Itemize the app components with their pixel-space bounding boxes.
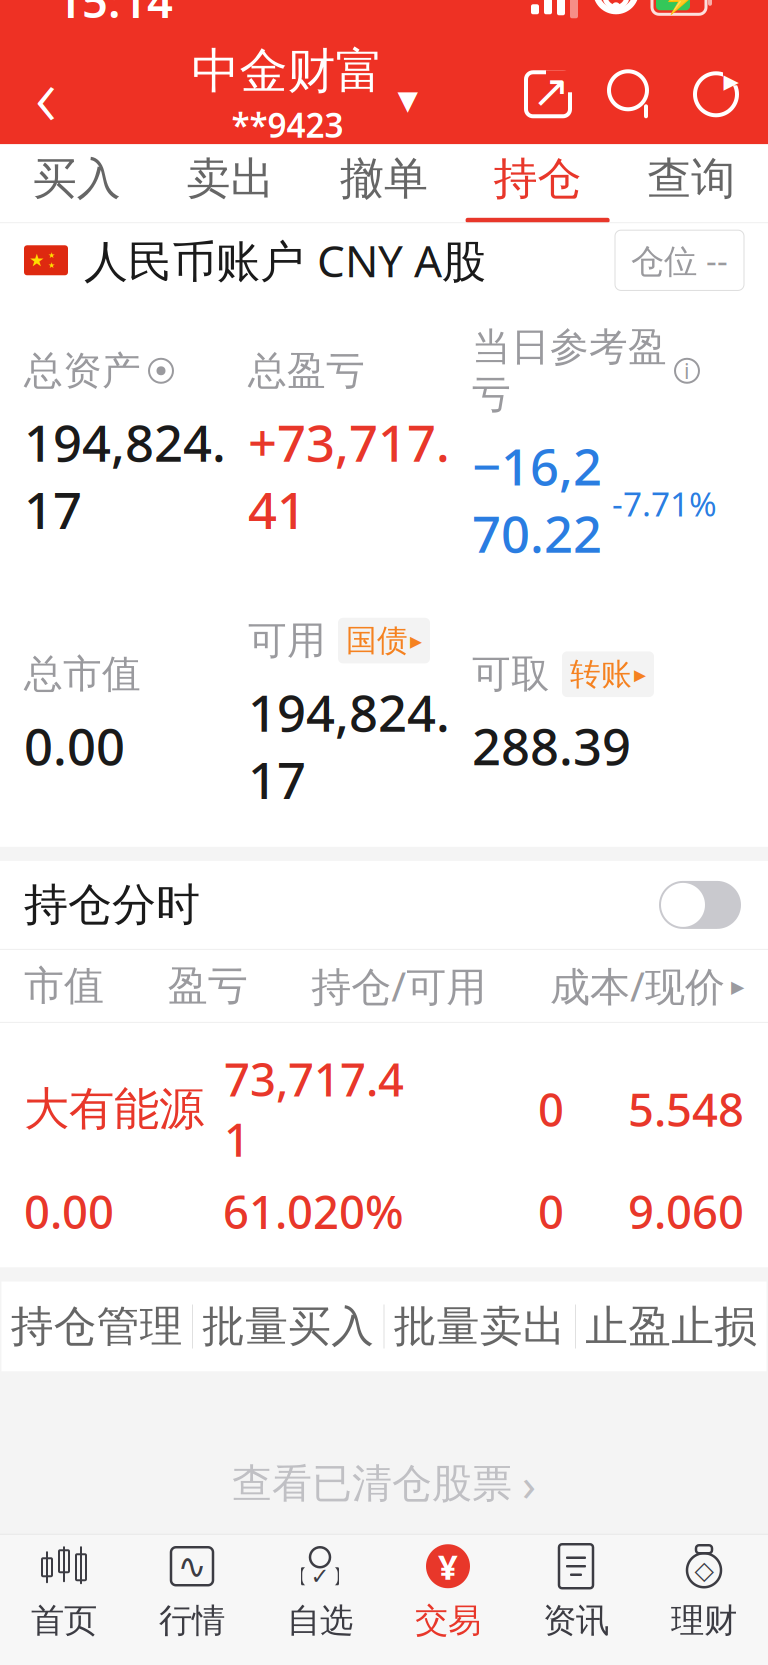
- button[interactable]: 查看已清仓股票: [212, 1441, 556, 1526]
- staticText: 仓位 --: [631, 238, 728, 282]
- staticText: 0.00: [24, 1181, 114, 1241]
- staticText: ↗: [532, 66, 570, 117]
- staticText: 人民币账户 CNY A股: [84, 231, 486, 289]
- staticText: 中金财富: [191, 42, 383, 101]
- button[interactable]: 返回: [0, 48, 92, 140]
- button[interactable]: ∿: [128, 1535, 256, 1647]
- staticText: 73,717.41: [224, 1049, 404, 1169]
- staticText: 持仓: [494, 152, 582, 206]
- staticText: 持仓/可用: [311, 959, 486, 1012]
- button[interactable]: 卖出: [154, 144, 307, 222]
- staticText: 成本/现价: [550, 959, 725, 1012]
- button[interactable]: 持仓: [461, 144, 614, 222]
- staticText: 194,824.17: [248, 678, 450, 813]
- staticText: 卖出: [186, 152, 274, 206]
- button[interactable]: 大有能源: [0, 1023, 768, 1267]
- button[interactable]: 批量买入: [193, 1281, 383, 1371]
- staticText: 持仓分时: [24, 878, 200, 932]
- staticText: 0: [538, 1181, 564, 1241]
- button[interactable]: ✓: [256, 1535, 384, 1647]
- staticText: 批量买入: [202, 1300, 374, 1353]
- staticText: 批量卖出: [394, 1300, 566, 1353]
- staticText: 9.060: [628, 1181, 744, 1241]
- staticText: 理财: [671, 1600, 737, 1641]
- button[interactable]: 持仓管理: [1, 1281, 192, 1371]
- button[interactable]: 分享: [518, 64, 578, 124]
- staticText: ▸: [410, 627, 422, 654]
- staticText: 总资产: [24, 347, 141, 394]
- staticText: 撤单: [340, 152, 428, 206]
- staticText: 持仓管理: [11, 1300, 183, 1353]
- staticText: ▶: [723, 70, 738, 93]
- staticText: 可取: [472, 650, 550, 698]
- staticText: 首页: [31, 1600, 97, 1641]
- staticText: ‹: [35, 39, 57, 149]
- staticText: **9423: [231, 103, 343, 147]
- staticText: 15:14: [56, 0, 173, 30]
- staticText: ▸: [634, 661, 646, 688]
- staticText: ▼: [397, 85, 418, 115]
- button[interactable]: ◇: [640, 1535, 768, 1647]
- staticText: 0.00: [24, 712, 125, 779]
- staticText: +73,717.41: [248, 408, 450, 543]
- button[interactable]: 批量卖出: [384, 1281, 575, 1371]
- staticText: 大有能源: [24, 1081, 204, 1137]
- staticText: 自选: [287, 1600, 353, 1641]
- staticText: 查看已清仓股票: [232, 1459, 512, 1508]
- staticText: 5.548: [628, 1079, 744, 1139]
- button[interactable]: 仓位 --: [615, 230, 744, 290]
- staticText: 可用: [248, 617, 326, 664]
- staticText: i: [684, 357, 690, 385]
- button[interactable]: 转账: [562, 651, 654, 697]
- button[interactable]: 刷新: [686, 64, 746, 124]
- staticText: ★: [29, 250, 45, 270]
- staticText: 盈亏: [168, 961, 248, 1010]
- button[interactable]: 查询: [614, 144, 768, 222]
- staticText: 总盈亏: [248, 347, 365, 394]
- staticText: 总市值: [24, 650, 141, 698]
- staticText: 资讯: [543, 1600, 609, 1641]
- staticText: 194,824.17: [24, 408, 226, 543]
- staticText: 61.020%: [223, 1181, 404, 1241]
- staticText: 当日参考盈亏: [472, 323, 667, 418]
- staticText: 288.39: [472, 712, 631, 779]
- button[interactable]: 中金财富: [181, 42, 428, 147]
- staticText: 行情: [159, 1600, 225, 1641]
- staticText: 0: [538, 1079, 564, 1139]
- staticText: ¥: [438, 1543, 458, 1589]
- staticText: 买入: [33, 152, 121, 206]
- staticText: 交易: [415, 1600, 481, 1641]
- staticText: 转账: [570, 655, 632, 693]
- staticText: ★: [48, 261, 55, 270]
- staticText: ✓: [310, 1563, 329, 1589]
- staticText: 国债: [346, 622, 408, 659]
- staticText: ▸: [731, 971, 744, 1001]
- staticText: 市值: [24, 961, 104, 1010]
- button[interactable]: 撤单: [307, 144, 461, 222]
- staticText: ◇: [694, 1556, 713, 1585]
- staticText: -7.71%: [612, 481, 717, 526]
- button[interactable]: 资讯: [512, 1535, 640, 1647]
- staticText: ∿: [177, 1547, 206, 1586]
- button[interactable]: 国债: [338, 618, 430, 663]
- button[interactable]: ¥: [384, 1535, 512, 1647]
- staticText: ★: [48, 251, 55, 260]
- button[interactable]: 止盈止损: [576, 1281, 766, 1371]
- staticText: ›: [522, 1453, 536, 1514]
- staticText: −16,270.22: [472, 432, 602, 567]
- staticText: 查询: [647, 152, 735, 206]
- button[interactable]: 首页: [0, 1535, 128, 1647]
- staticText: 止盈止损: [585, 1300, 757, 1353]
- button[interactable]: 持仓分时开关: [656, 877, 744, 933]
- button[interactable]: 搜索: [602, 64, 662, 124]
- staticText: ⚡: [662, 0, 695, 16]
- button[interactable]: 买入: [0, 144, 154, 222]
